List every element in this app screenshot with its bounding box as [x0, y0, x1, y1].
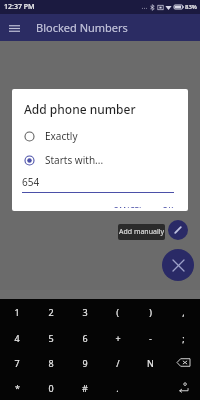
staticText: -: [149, 332, 152, 344]
staticText: *: [15, 382, 20, 394]
staticText: 83%: [185, 3, 197, 11]
staticText: 654: [22, 175, 40, 189]
staticText: Add phone number: [24, 101, 136, 117]
button[interactable]: 4: [0, 325, 34, 350]
button[interactable]: Starts with...: [12, 151, 188, 169]
button[interactable]: Open navigation drawer: [4, 18, 24, 38]
button[interactable]: 9: [68, 350, 101, 375]
staticText: 2: [48, 306, 54, 318]
button[interactable]: (: [101, 299, 134, 325]
button[interactable]: Exactly: [12, 127, 188, 145]
staticText: .: [116, 382, 119, 394]
staticText: 4: [14, 332, 20, 344]
button[interactable]: CANCEL: [107, 202, 150, 211]
button[interactable]: +: [101, 325, 134, 350]
button[interactable]: 8: [34, 350, 68, 375]
button[interactable]: 2: [34, 299, 68, 325]
staticText: #: [82, 382, 88, 394]
button[interactable]: ): [134, 299, 167, 325]
button[interactable]: 654: [22, 175, 174, 193]
button[interactable]: ,: [167, 299, 200, 325]
staticText: (: [116, 306, 119, 318]
staticText: 3: [82, 306, 88, 318]
button[interactable]: 5: [34, 325, 68, 350]
staticText: Add manually: [119, 227, 165, 237]
staticText: Starts with...: [45, 153, 104, 167]
button[interactable]: *: [0, 375, 34, 400]
button[interactable]: ;: [167, 325, 200, 350]
staticText: 6: [82, 332, 88, 344]
staticText: CANCEL: [113, 205, 144, 208]
staticText: +: [115, 332, 121, 344]
staticText: 1: [14, 306, 20, 318]
button[interactable]: Add manually: [168, 220, 188, 240]
button[interactable]: Enter: [167, 375, 200, 400]
button[interactable]: 1: [0, 299, 34, 325]
button[interactable]: 0: [34, 375, 68, 400]
button[interactable]: OK: [156, 202, 180, 211]
staticText: Blocked Numbers: [36, 20, 128, 35]
button[interactable]: 6: [68, 325, 101, 350]
staticText: OK: [162, 205, 174, 208]
button[interactable]: /: [101, 350, 134, 375]
staticText: 9: [82, 357, 88, 369]
button[interactable]: 7: [0, 350, 34, 375]
staticText: ,: [182, 306, 185, 318]
staticText: ;: [182, 332, 185, 344]
button[interactable]: 3: [68, 299, 101, 325]
staticText: 8: [48, 357, 54, 369]
staticText: 5: [48, 332, 54, 344]
button[interactable]: Delete: [167, 350, 200, 375]
staticText: ): [149, 306, 152, 318]
button[interactable]: N: [134, 350, 167, 375]
staticText: /: [116, 357, 120, 369]
staticText: Exactly: [45, 129, 78, 143]
button[interactable]: Close: [162, 249, 194, 281]
staticText: 7: [14, 357, 20, 369]
staticText: 0: [48, 382, 54, 394]
staticText: 12:37 PM: [4, 2, 35, 12]
staticText: N: [147, 357, 154, 369]
button[interactable]: -: [134, 325, 167, 350]
button[interactable]: #: [68, 375, 101, 400]
button[interactable]: .: [101, 375, 134, 400]
